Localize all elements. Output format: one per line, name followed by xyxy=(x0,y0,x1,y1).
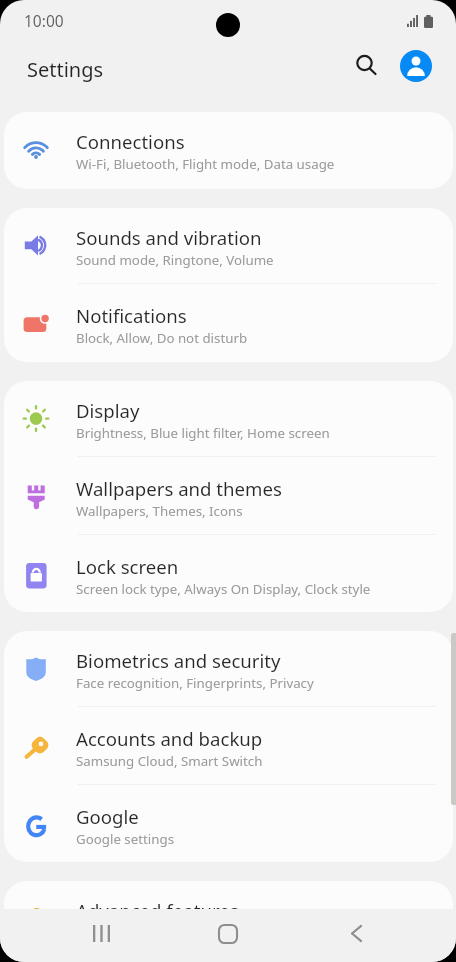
staticText: Screen lock type, Always On Display, Clo… xyxy=(76,580,371,598)
staticText: Brightness, Blue light filter, Home scre… xyxy=(76,424,330,442)
button[interactable]: Google xyxy=(4,787,453,862)
staticText: Google settings xyxy=(76,830,174,848)
button[interactable]: Advanced features xyxy=(4,881,453,909)
staticText: Display xyxy=(76,398,140,423)
staticText: Accounts and backup xyxy=(76,726,263,751)
staticText: Wallpapers and themes xyxy=(76,476,282,501)
button[interactable]: Lock screen xyxy=(4,537,453,612)
button[interactable]: Home xyxy=(199,907,257,960)
staticText: Connections xyxy=(76,129,185,154)
button[interactable]: Wallpapers and themes xyxy=(4,459,453,536)
staticText: Notifications xyxy=(76,303,187,328)
button[interactable]: Recent apps xyxy=(72,907,130,960)
staticText: Wallpapers, Themes, Icons xyxy=(76,502,243,520)
staticText: Lock screen xyxy=(76,554,179,579)
staticText: Face recognition, Fingerprints, Privacy xyxy=(76,674,314,692)
button[interactable]: Back xyxy=(327,907,385,960)
button[interactable]: Biometrics and security xyxy=(4,631,453,708)
staticText: Sounds and vibration xyxy=(76,225,262,250)
button[interactable]: Display xyxy=(4,381,453,458)
staticText: Settings xyxy=(27,56,104,83)
staticText: Google xyxy=(76,804,139,829)
button[interactable]: Notifications xyxy=(4,286,453,362)
button[interactable]: Search xyxy=(344,43,388,87)
staticText: Samsung Cloud, Smart Switch xyxy=(76,752,263,770)
staticText: 10:00 xyxy=(24,10,64,31)
staticText: Biometrics and security xyxy=(76,648,281,673)
staticText: Block, Allow, Do not disturb xyxy=(76,329,248,347)
staticText: Wi-Fi, Bluetooth, Flight mode, Data usag… xyxy=(76,155,335,173)
button[interactable]: Connections xyxy=(4,112,453,189)
button[interactable]: Sounds and vibration xyxy=(4,208,453,285)
button[interactable]: Account xyxy=(394,44,438,88)
staticText: Sound mode, Ringtone, Volume xyxy=(76,251,274,269)
staticText: Advanced features xyxy=(76,898,239,909)
button[interactable]: Accounts and backup xyxy=(4,709,453,786)
